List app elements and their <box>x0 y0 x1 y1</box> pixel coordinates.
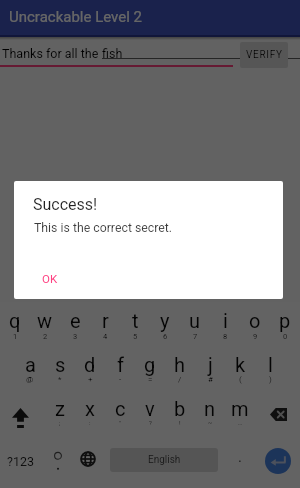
staticText: @ <box>26 375 34 384</box>
staticText: w <box>37 309 53 332</box>
button[interactable]: o <box>240 302 270 346</box>
staticText: y <box>160 309 170 332</box>
button[interactable]: c <box>105 390 135 434</box>
staticText: k <box>235 353 246 376</box>
staticText: v <box>145 397 155 420</box>
button[interactable]: i <box>210 302 240 346</box>
staticText: q <box>9 309 21 332</box>
button[interactable]: OK <box>33 265 66 291</box>
button[interactable]: b <box>165 390 195 434</box>
button[interactable]: s <box>45 346 75 390</box>
staticText: " <box>119 419 121 426</box>
staticText: VERIFY <box>246 49 283 61</box>
staticText: o <box>249 309 261 332</box>
staticText: j <box>208 353 213 376</box>
staticText: z <box>55 397 65 420</box>
button[interactable]: Emoji <box>43 434 73 488</box>
staticText: fish <box>102 46 123 61</box>
button[interactable]: d <box>75 346 105 390</box>
staticText: - <box>119 375 122 384</box>
staticText: ; <box>59 419 61 426</box>
staticText: 4 <box>103 332 108 341</box>
button[interactable]: VERIFY <box>240 42 288 68</box>
button[interactable]: a <box>15 346 45 390</box>
staticText: g <box>144 353 156 376</box>
staticText: e <box>70 309 81 332</box>
staticText: d <box>84 353 96 376</box>
staticText: t <box>132 309 139 332</box>
staticText: r <box>102 309 109 332</box>
button[interactable]: Enter <box>265 448 291 474</box>
button[interactable]: Shift <box>0 390 41 434</box>
staticText: 7 <box>193 332 198 341</box>
button[interactable]: h <box>165 346 195 390</box>
staticText: ! <box>179 419 181 426</box>
button[interactable]: y <box>150 302 180 346</box>
staticText: f <box>117 353 124 376</box>
staticText: b <box>174 397 186 420</box>
staticText: ?123 <box>7 454 34 469</box>
staticText: * <box>58 375 62 384</box>
staticText: English <box>148 454 181 466</box>
staticText: u <box>189 309 201 332</box>
button[interactable]: x <box>75 390 105 434</box>
staticText: ( <box>239 375 242 384</box>
staticText: 3 <box>73 332 78 341</box>
button[interactable]: English <box>110 448 218 472</box>
button[interactable]: f <box>105 346 135 390</box>
staticText: This is the correct secret. <box>34 221 173 235</box>
staticText: Success! <box>33 195 98 214</box>
button[interactable]: v <box>135 390 165 434</box>
button[interactable]: j <box>195 346 225 390</box>
staticText: c <box>115 397 126 420</box>
button[interactable]: n <box>195 390 225 434</box>
button[interactable]: q <box>0 302 30 346</box>
staticText: OK <box>42 272 58 285</box>
staticText: 5 <box>133 332 138 341</box>
staticText: a <box>25 353 36 376</box>
staticText: 2 <box>43 332 48 341</box>
button[interactable]: k <box>225 346 255 390</box>
staticText: 9 <box>253 332 258 341</box>
staticText: = <box>148 375 153 384</box>
staticText: n <box>204 397 216 420</box>
staticText: p <box>279 309 291 332</box>
staticText: ) <box>269 375 272 384</box>
button[interactable]: p <box>270 302 300 346</box>
button[interactable]: l <box>255 346 285 390</box>
staticText: s <box>55 353 66 376</box>
button[interactable]: ?123 <box>0 434 42 488</box>
staticText: ~ <box>208 419 213 426</box>
staticText: l <box>268 353 273 376</box>
staticText: 6 <box>163 332 168 341</box>
staticText: + <box>88 375 93 384</box>
staticText: i <box>223 309 228 332</box>
staticText: 1 <box>13 332 18 341</box>
button[interactable]: w <box>30 302 60 346</box>
staticText: x <box>85 397 95 420</box>
staticText: m <box>231 397 249 420</box>
staticText: Uncrackable Level 2 <box>9 8 143 26</box>
button[interactable]: t <box>120 302 150 346</box>
button[interactable]: r <box>90 302 120 346</box>
staticText: . <box>238 448 242 466</box>
button[interactable]: z <box>45 390 75 434</box>
staticText: Thanks for all the <box>2 46 99 61</box>
staticText: ? <box>149 419 152 426</box>
button[interactable]: u <box>180 302 210 346</box>
button[interactable]: e <box>60 302 90 346</box>
button[interactable]: Change language <box>73 434 103 488</box>
staticText: : <box>89 419 91 426</box>
staticText: / <box>178 375 182 384</box>
staticText: … <box>238 419 243 426</box>
button[interactable]: g <box>135 346 165 390</box>
staticText: 8 <box>223 332 228 341</box>
staticText: h <box>174 353 186 376</box>
button[interactable]: Backspace <box>255 390 300 434</box>
button[interactable]: m <box>225 390 255 434</box>
staticText: 0 <box>283 332 288 341</box>
staticText: # <box>208 375 213 384</box>
